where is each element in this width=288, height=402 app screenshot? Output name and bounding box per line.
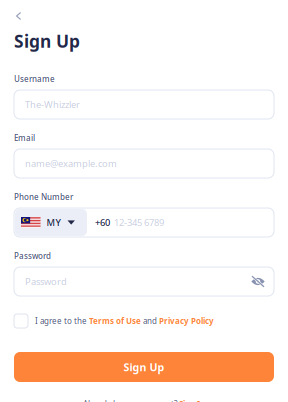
button[interactable]: Already have an account?: [14, 399, 274, 402]
staticText: Terms of Use: [89, 316, 141, 326]
staticText: Privacy Policy: [159, 316, 214, 326]
staticText: 12-345 6789: [114, 216, 164, 229]
staticText: Password: [14, 251, 51, 261]
staticText: name@example.com: [25, 157, 117, 170]
staticText: MY: [46, 216, 60, 229]
button[interactable]: Privacy Policy: [159, 316, 214, 326]
staticText: The-Whizzler: [25, 98, 80, 111]
staticText: Username: [14, 74, 55, 84]
button[interactable]: Country code: [15, 209, 87, 236]
staticText: +60: [95, 216, 110, 229]
staticText: and: [141, 316, 159, 326]
staticText: Sign Up: [123, 360, 164, 374]
staticText: Sign In: [179, 399, 205, 402]
button[interactable]: Show password: [251, 276, 265, 287]
button[interactable]: Agree to terms: [14, 314, 28, 328]
staticText: Already have an account?: [83, 399, 179, 402]
staticText: I agree to the: [35, 316, 89, 326]
staticText: Password: [25, 275, 67, 288]
button[interactable]: Sign Up: [14, 352, 274, 382]
staticText: Email: [14, 133, 35, 143]
staticText: Sign Up: [14, 29, 80, 52]
button[interactable]: Back: [0, 8, 50, 24]
button[interactable]: Terms of Use: [89, 316, 141, 326]
staticText: Phone Number: [14, 192, 73, 202]
